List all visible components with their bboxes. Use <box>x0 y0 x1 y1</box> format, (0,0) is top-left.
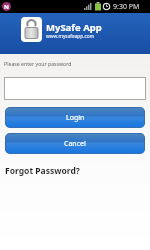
staticText: Forgot Password? <box>5 165 80 177</box>
button[interactable]: Login <box>5 107 145 128</box>
staticText: Cancel <box>64 139 86 149</box>
button[interactable]: Forgot Password? <box>5 165 80 177</box>
staticText: www.mysafeapp.com <box>46 33 95 40</box>
staticText: Please enter your password <box>4 60 72 67</box>
staticText: MySafe App <box>46 21 102 34</box>
button[interactable]: Cancel <box>5 133 145 154</box>
staticText: Login <box>66 113 85 123</box>
button[interactable] <box>4 77 146 100</box>
staticText: 9:30 PM <box>113 2 140 12</box>
staticText: N <box>4 3 9 11</box>
